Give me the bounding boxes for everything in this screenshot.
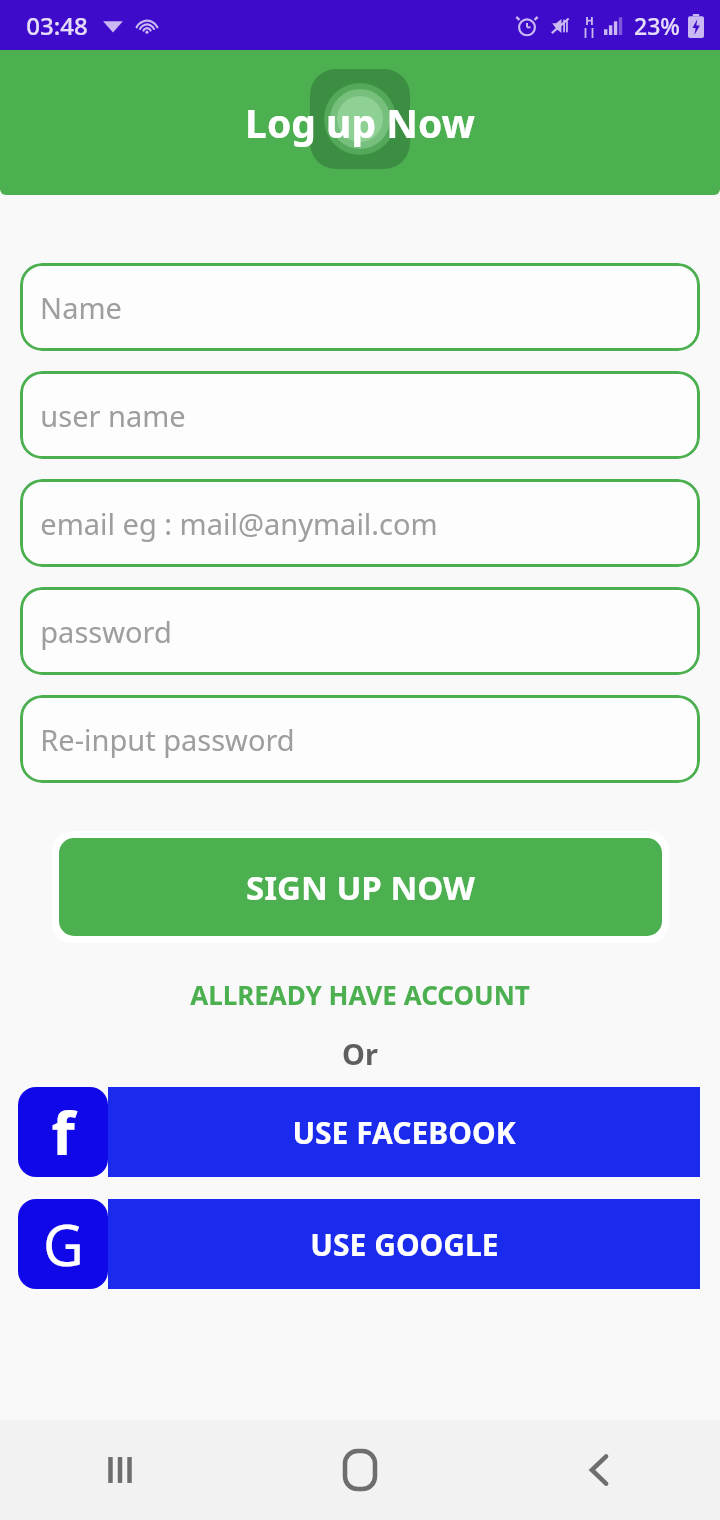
other: Facebook (18, 1087, 108, 1177)
staticText: Log up Now (245, 96, 475, 149)
staticText: G (43, 1206, 84, 1282)
button[interactable]: Recents (75, 1425, 165, 1515)
other: Google (18, 1199, 108, 1289)
button[interactable]: user name (20, 371, 700, 459)
button[interactable]: password (20, 587, 700, 675)
staticText: Or (342, 1034, 378, 1073)
button[interactable]: SIGN UP NOW (59, 838, 662, 936)
staticText: SIGN UP NOW (246, 865, 475, 910)
button[interactable]: Back (555, 1425, 645, 1515)
staticText: 03:48 (26, 9, 88, 42)
staticText: ALLREADY HAVE ACCOUNT (190, 977, 530, 1012)
staticText: Re-input password (40, 720, 295, 759)
staticText: password (40, 612, 172, 651)
staticText: USE FACEBOOK (292, 1112, 516, 1153)
button[interactable]: Re-input password (20, 695, 700, 783)
staticText: Name (40, 288, 122, 327)
button[interactable]: Facebook (18, 1087, 700, 1177)
button[interactable]: ALLREADY HAVE ACCOUNT (180, 973, 540, 1016)
staticText: f (51, 1091, 75, 1173)
button[interactable]: Google (18, 1199, 700, 1289)
staticText: H (585, 13, 594, 28)
staticText: user name (40, 396, 186, 435)
staticText: email eg : mail@anymail.com (40, 504, 438, 543)
button[interactable]: Home (315, 1425, 405, 1515)
button[interactable]: email eg : mail@anymail.com (20, 479, 700, 567)
staticText: 23% (634, 10, 680, 41)
button[interactable]: Name (20, 263, 700, 351)
staticText: USE GOOGLE (310, 1224, 499, 1265)
